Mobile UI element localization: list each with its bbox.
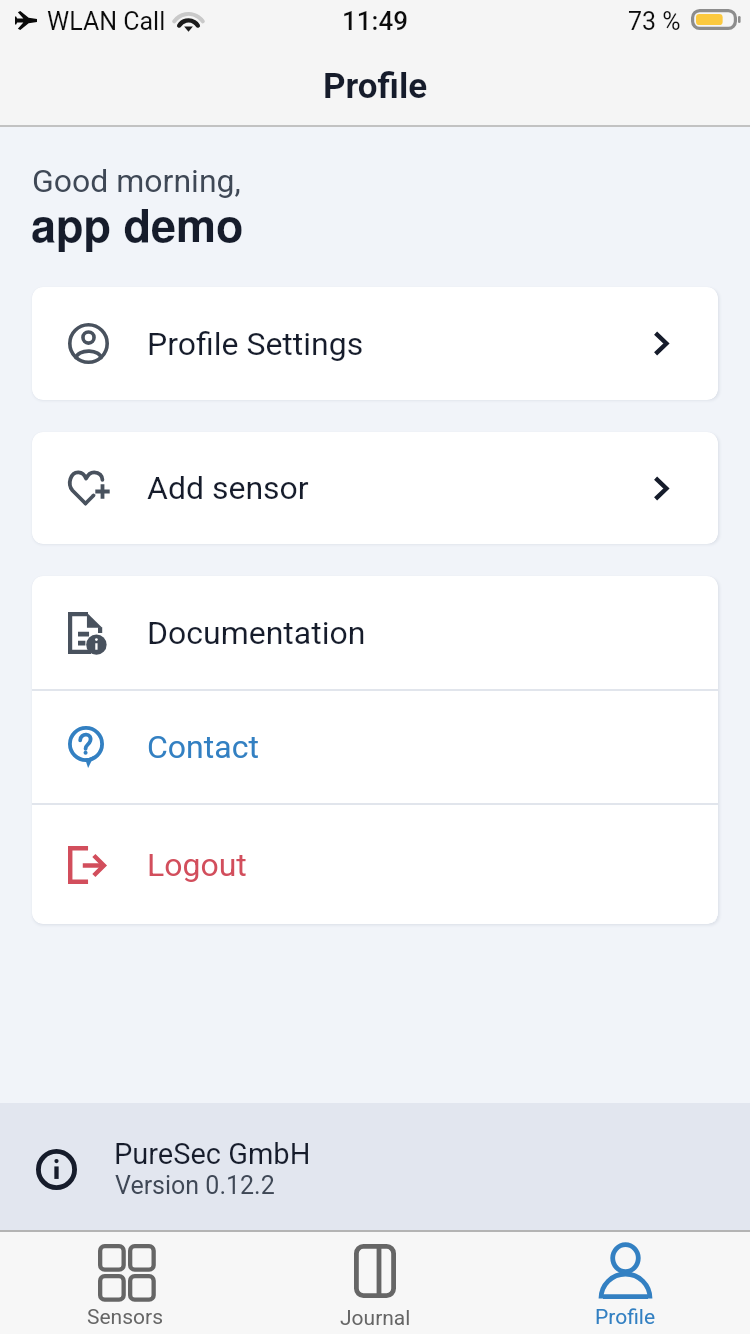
staticText: Version 0.12.2 <box>115 1171 275 1200</box>
staticText: Profile <box>595 1305 656 1330</box>
button[interactable]: Profile <box>500 1232 750 1334</box>
button[interactable]: Add sensor <box>32 432 718 544</box>
button[interactable]: Documentation <box>32 576 718 689</box>
button[interactable]: Contact <box>32 691 718 803</box>
button[interactable]: Logout <box>32 805 718 924</box>
staticText: Documentation <box>147 614 366 652</box>
button[interactable]: Profile Settings <box>32 287 718 400</box>
staticText: Add sensor <box>147 469 309 507</box>
staticText: app demo <box>31 191 244 255</box>
staticText: 73 % <box>628 7 681 36</box>
staticText: Good morning, <box>32 162 241 200</box>
staticText: Contact <box>147 728 259 766</box>
staticText: Logout <box>147 846 247 884</box>
staticText: PureSec GmbH <box>114 1137 311 1171</box>
staticText: Sensors <box>87 1305 163 1330</box>
staticText: 11:49 <box>342 6 408 36</box>
staticText: WLAN Call <box>47 7 166 36</box>
button[interactable]: Journal <box>250 1232 500 1334</box>
staticText: Profile Settings <box>147 325 364 363</box>
staticText: Journal <box>340 1306 411 1331</box>
staticText: Profile <box>323 66 428 107</box>
button[interactable]: Sensors <box>0 1232 250 1334</box>
